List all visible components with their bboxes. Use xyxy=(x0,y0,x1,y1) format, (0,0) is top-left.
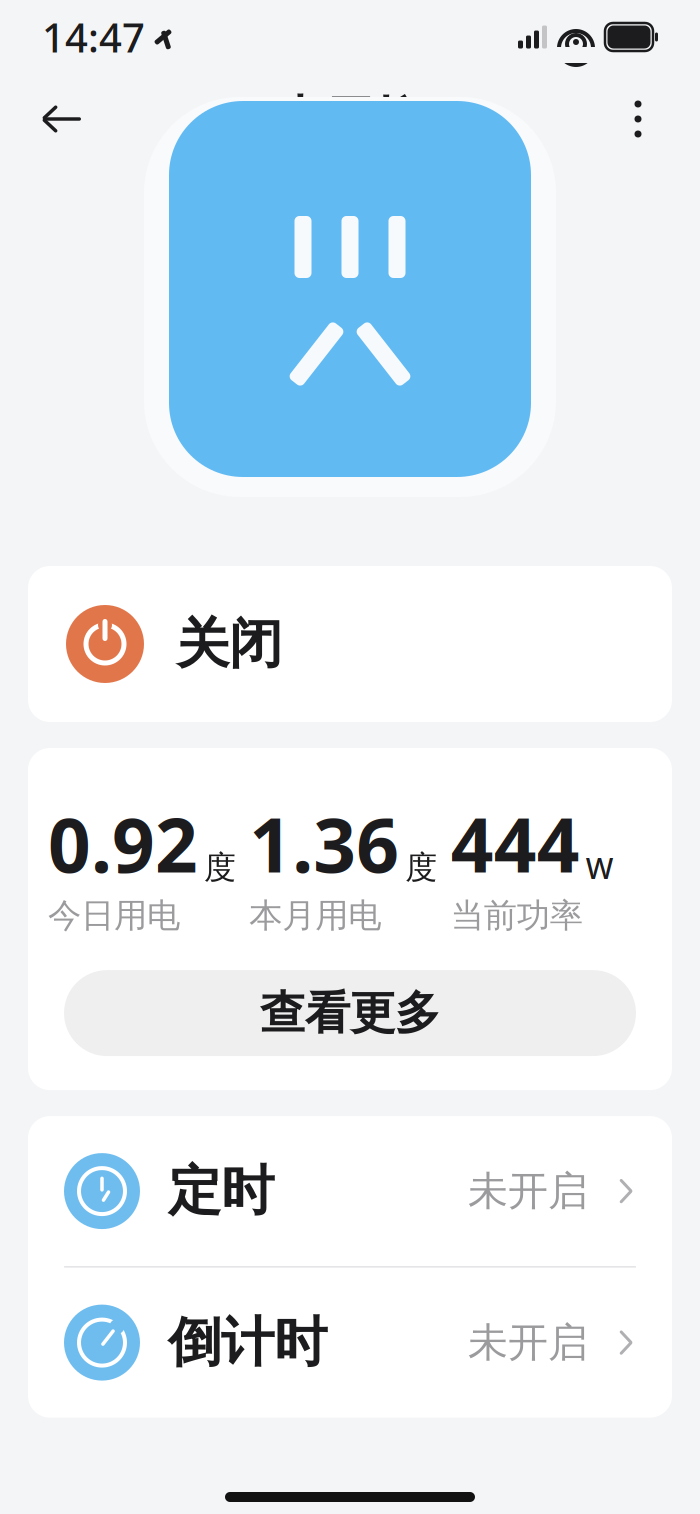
button[interactable]: 返回 xyxy=(25,82,99,156)
staticText: W xyxy=(586,848,614,887)
button[interactable]: 倒计时 xyxy=(28,1268,672,1418)
staticText: 未开启 xyxy=(468,1166,588,1216)
staticText: 0.92 xyxy=(48,794,198,893)
staticText: 查看更多 xyxy=(260,985,440,1041)
staticText: 关闭 xyxy=(176,611,282,677)
staticText: 定时 xyxy=(168,1158,274,1224)
button[interactable]: 更多选项 xyxy=(601,82,675,156)
staticText: 1.36 xyxy=(249,794,399,893)
staticText: 当前功率 xyxy=(451,895,583,936)
button[interactable]: 定时 xyxy=(28,1116,672,1266)
staticText: 今日用电 xyxy=(48,895,180,936)
staticText: 度 xyxy=(204,848,236,887)
staticText: 444 xyxy=(451,794,580,893)
staticText: 未开启 xyxy=(468,1318,588,1367)
staticText: 本月用电 xyxy=(249,895,381,936)
button[interactable]: 关闭 xyxy=(28,566,672,722)
staticText: 卡罗拉 xyxy=(278,89,422,148)
staticText: 倒计时 xyxy=(168,1310,327,1375)
button[interactable]: 查看更多 xyxy=(64,970,636,1056)
staticText: 度 xyxy=(405,848,437,887)
staticText: 14:47 xyxy=(42,10,145,63)
